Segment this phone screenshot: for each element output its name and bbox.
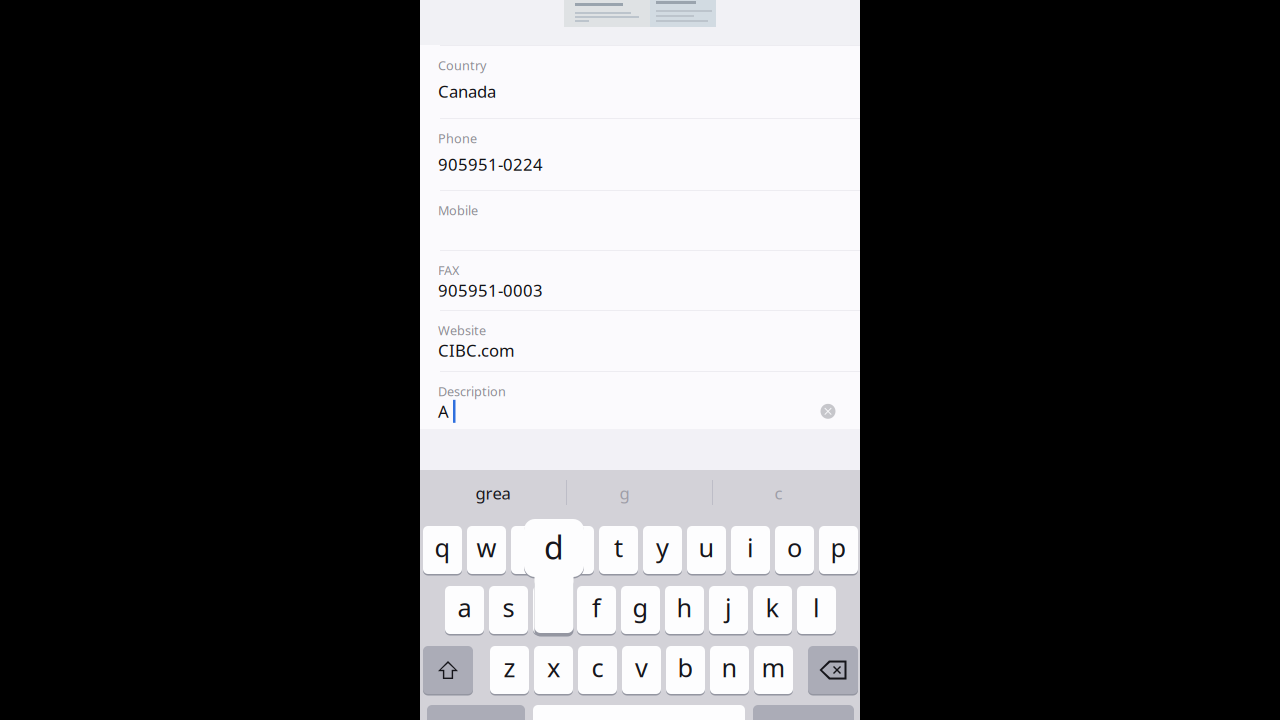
button[interactable]: Mobile	[420, 191, 860, 250]
staticText: h	[676, 591, 692, 624]
staticText: z	[503, 651, 515, 684]
button[interactable]: i	[731, 526, 770, 574]
staticText: c	[591, 651, 603, 684]
staticText: q	[434, 531, 450, 564]
staticText: FAX	[438, 262, 459, 279]
button[interactable]: d	[533, 586, 572, 634]
staticText: Description	[438, 383, 506, 400]
button[interactable]: g	[621, 586, 660, 634]
button[interactable]: k	[753, 586, 792, 634]
staticText: Mobile	[438, 202, 478, 219]
button[interactable]: h	[665, 586, 704, 634]
button[interactable]: a	[445, 586, 484, 634]
staticText: Country	[438, 57, 486, 74]
button[interactable]: r	[555, 526, 594, 574]
staticText: f	[592, 591, 601, 624]
staticText: o	[787, 531, 802, 564]
button[interactable]: j	[709, 586, 748, 634]
staticText: j	[725, 591, 732, 624]
button[interactable]: Website	[420, 311, 860, 371]
staticText: c	[774, 482, 782, 504]
button[interactable]: Delete	[808, 646, 858, 694]
button[interactable]: w	[467, 526, 506, 574]
staticText: Phone	[438, 130, 477, 147]
button[interactable]: g	[567, 470, 712, 520]
button[interactable]: p	[819, 526, 858, 574]
button[interactable]: c	[578, 646, 617, 694]
staticText: u	[698, 531, 714, 564]
staticText: g	[632, 591, 648, 624]
staticText: 905951-0003	[438, 279, 543, 301]
button[interactable]: n	[710, 646, 749, 694]
staticText: A	[438, 400, 449, 422]
staticText: l	[813, 591, 820, 624]
button[interactable]: grea	[420, 470, 566, 520]
button[interactable]: return	[753, 705, 854, 720]
button[interactable]: Description	[420, 372, 860, 429]
button[interactable]: Phone	[420, 119, 860, 190]
button[interactable]: v	[622, 646, 661, 694]
staticText: s	[502, 591, 514, 624]
staticText: m	[761, 651, 785, 684]
staticText: a	[457, 591, 471, 624]
staticText: Website	[438, 322, 486, 339]
staticText: d	[544, 526, 564, 568]
staticText: t	[614, 531, 623, 564]
staticText: k	[765, 591, 779, 624]
staticText: n	[721, 651, 737, 684]
button[interactable]: z	[490, 646, 529, 694]
button[interactable]: q	[423, 526, 462, 574]
button[interactable]: e	[511, 526, 550, 574]
staticText: y	[656, 531, 669, 564]
button[interactable]: y	[643, 526, 682, 574]
staticText: i	[747, 531, 754, 564]
staticText: w	[476, 531, 496, 564]
button[interactable]: f	[577, 586, 616, 634]
button[interactable]: t	[599, 526, 638, 574]
button[interactable]: Shift	[423, 646, 473, 694]
staticText: Canada	[438, 80, 496, 102]
button[interactable]: Country	[420, 46, 860, 118]
button[interactable]: o	[775, 526, 814, 574]
button[interactable]: FAX	[420, 251, 860, 310]
button[interactable]: s	[489, 586, 528, 634]
button[interactable]: l	[797, 586, 836, 634]
button[interactable]: 123	[427, 705, 525, 720]
staticText: x	[547, 651, 560, 684]
staticText: 905951-0224	[438, 153, 543, 175]
staticText: g	[619, 482, 629, 504]
staticText: v	[635, 651, 648, 684]
staticText: p	[830, 531, 846, 564]
button[interactable]: m	[754, 646, 793, 694]
button[interactable]: b	[666, 646, 705, 694]
staticText: CIBC.com	[438, 339, 515, 361]
staticText: grea	[475, 482, 510, 504]
staticText: b	[677, 651, 693, 684]
button[interactable]: x	[534, 646, 573, 694]
button[interactable]: u	[687, 526, 726, 574]
